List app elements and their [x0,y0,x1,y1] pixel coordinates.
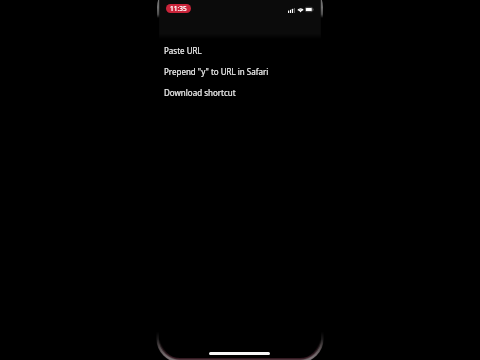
button[interactable]: Prepend "y" to URL in Safari [160,61,320,82]
button[interactable]: Recording indicator 11:35 [166,4,191,13]
button[interactable]: Paste URL [160,40,320,61]
staticText: 11:35 [170,4,187,13]
button[interactable]: Download shortcut [160,82,320,103]
staticText: Paste URL [164,45,202,56]
staticText: Download shortcut [164,87,236,98]
staticText: Prepend "y" to URL in Safari [164,66,269,77]
